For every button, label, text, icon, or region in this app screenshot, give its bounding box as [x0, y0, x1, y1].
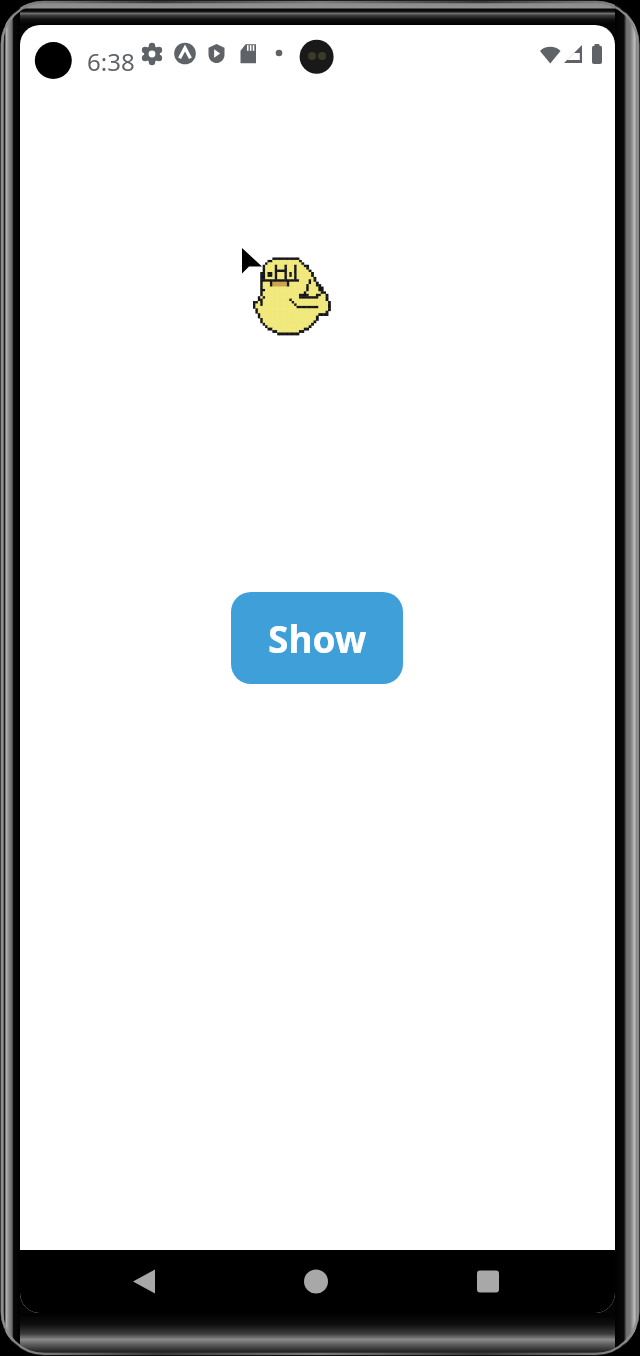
staticText: 6:38: [87, 45, 135, 78]
staticText: Show: [268, 613, 367, 663]
button[interactable]: Show: [231, 592, 403, 684]
